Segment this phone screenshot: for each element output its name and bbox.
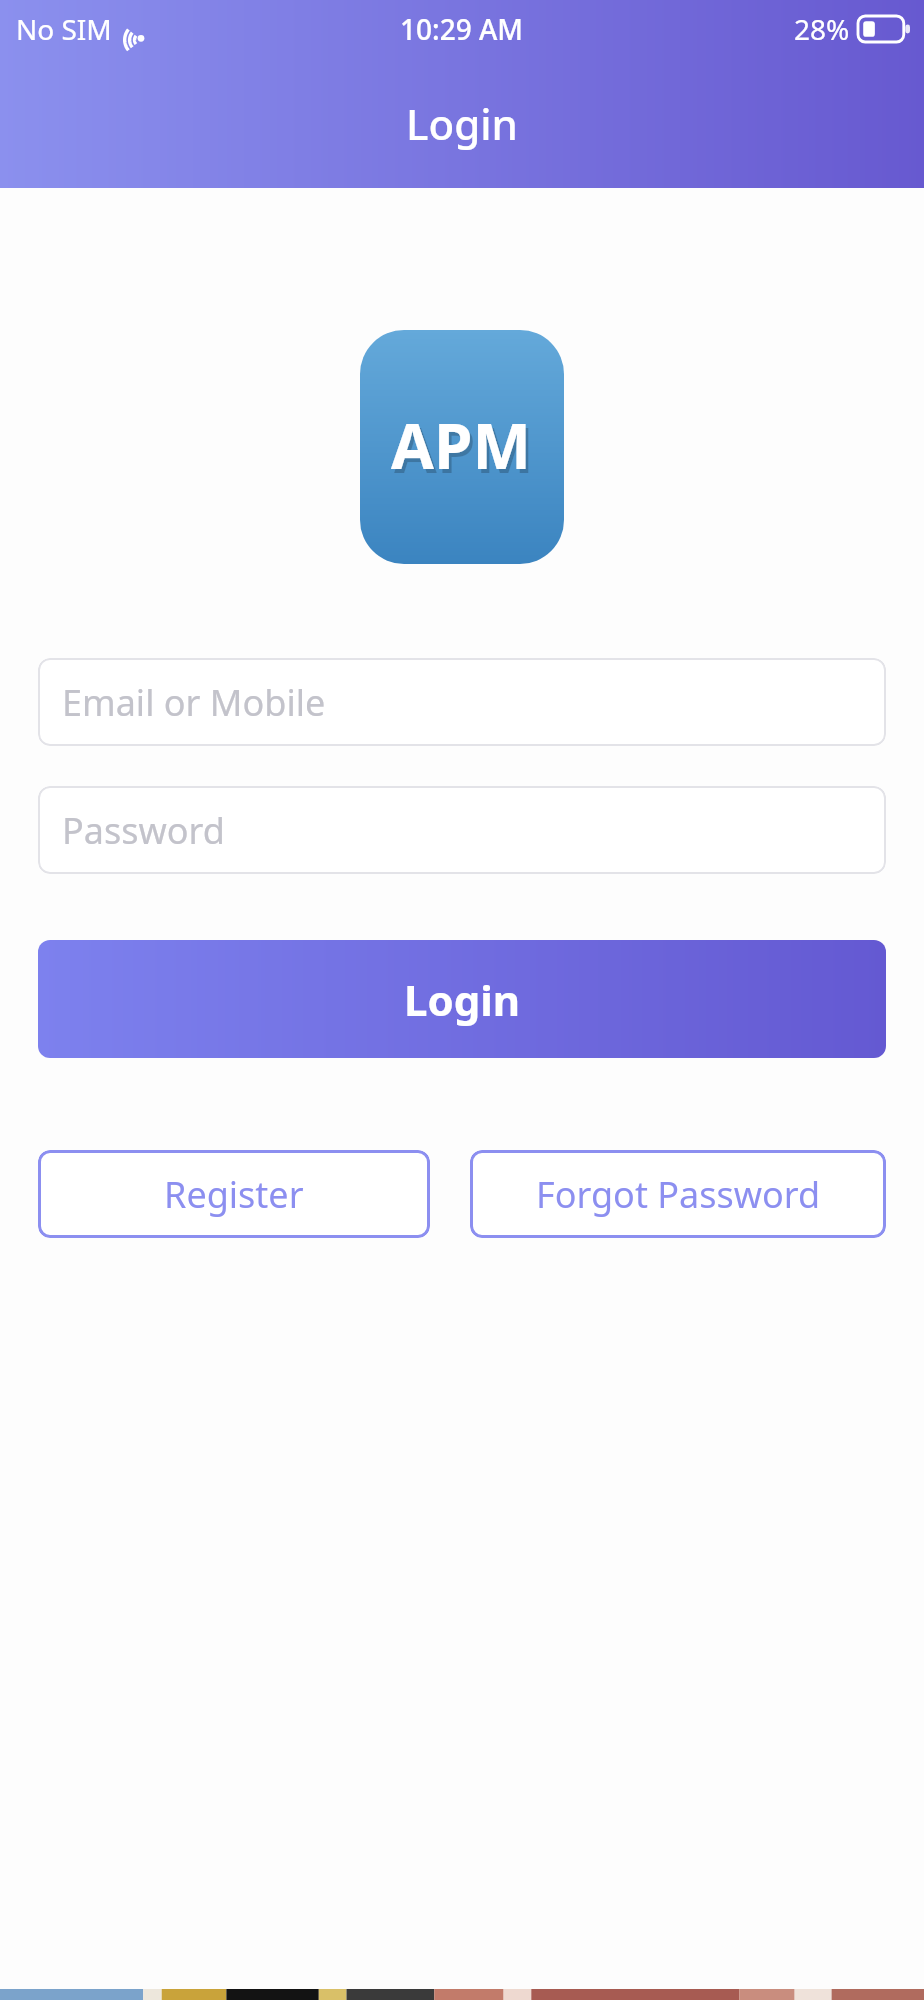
staticText: APM	[391, 403, 531, 487]
staticText: Register	[164, 1170, 304, 1219]
staticText: 28%	[794, 10, 850, 48]
staticText: Login	[0, 95, 924, 152]
button[interactable]: Password	[38, 786, 886, 874]
other: Wi-Fi	[124, 16, 158, 42]
staticText: APM	[394, 407, 534, 491]
staticText: Password	[62, 806, 225, 855]
staticText: No SIM	[16, 10, 112, 48]
staticText: Forgot Password	[536, 1170, 821, 1219]
other: Battery 28 percent	[858, 16, 910, 42]
button[interactable]: Login	[38, 940, 886, 1058]
staticText: Login	[404, 971, 521, 1028]
button[interactable]: Register	[38, 1150, 430, 1238]
button[interactable]: Email or Mobile	[38, 658, 886, 746]
button[interactable]: Forgot Password	[470, 1150, 886, 1238]
staticText: 10:29 AM	[400, 10, 524, 48]
staticText: Email or Mobile	[62, 678, 326, 727]
